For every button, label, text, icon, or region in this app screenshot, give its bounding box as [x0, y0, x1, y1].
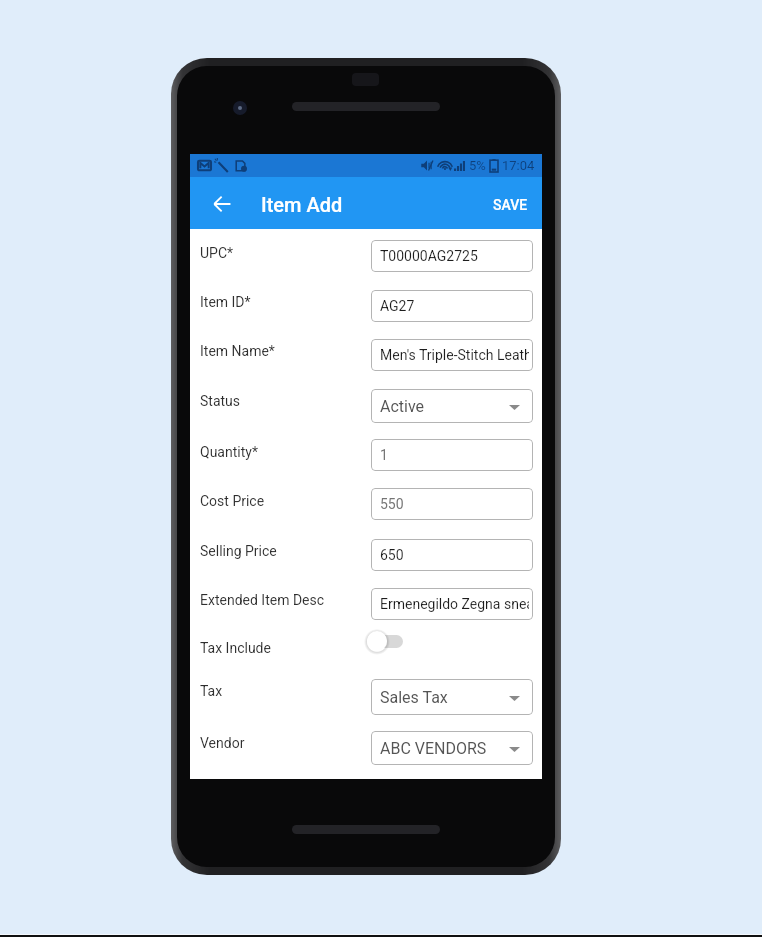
- button[interactable]: Ermenegildo Zegna sneaker: [371, 588, 533, 620]
- button[interactable]: 650: [371, 539, 533, 571]
- staticText: 650: [380, 547, 404, 563]
- staticText: Sales Tax: [380, 688, 448, 707]
- button[interactable]: 550: [371, 488, 533, 520]
- staticText: 1: [380, 447, 388, 463]
- staticText: Selling Price: [200, 543, 277, 559]
- staticText: Quantity*: [200, 444, 258, 460]
- staticText: Ermenegildo Zegna sneaker: [380, 596, 529, 612]
- button[interactable]: Tax include toggle: [367, 628, 403, 654]
- staticText: SAVE: [493, 197, 528, 213]
- staticText: 5%: [469, 158, 486, 173]
- staticText: Item Add: [261, 193, 343, 216]
- staticText: Extended Item Desc: [200, 592, 325, 608]
- staticText: ABC VENDORS: [380, 739, 487, 758]
- staticText: Cost Price: [200, 493, 265, 509]
- button[interactable]: ABC VENDORS: [371, 731, 533, 765]
- button[interactable]: SAVE: [482, 187, 539, 223]
- staticText: Tax: [200, 683, 223, 699]
- staticText: Item ID*: [200, 294, 251, 310]
- button[interactable]: Navigate up: [198, 180, 246, 228]
- button[interactable]: AG27: [371, 290, 533, 322]
- staticText: T00000AG2725: [380, 248, 478, 264]
- staticText: Status: [200, 393, 241, 409]
- staticText: Item Name*: [200, 343, 275, 359]
- button[interactable]: Men's Triple-Stitch Leather: [371, 339, 533, 371]
- button[interactable]: 1: [371, 439, 533, 471]
- staticText: 550: [380, 496, 404, 512]
- staticText: Men's Triple-Stitch Leather: [380, 347, 529, 363]
- staticText: Active: [380, 397, 425, 416]
- button[interactable]: T00000AG2725: [371, 240, 533, 272]
- staticText: 17:04: [502, 158, 535, 173]
- staticText: Vendor: [200, 735, 245, 751]
- staticText: AG27: [380, 298, 415, 314]
- button[interactable]: Sales Tax: [371, 679, 533, 715]
- button[interactable]: Active: [371, 389, 533, 423]
- staticText: Tax Include: [200, 640, 271, 656]
- staticText: UPC*: [200, 245, 234, 261]
